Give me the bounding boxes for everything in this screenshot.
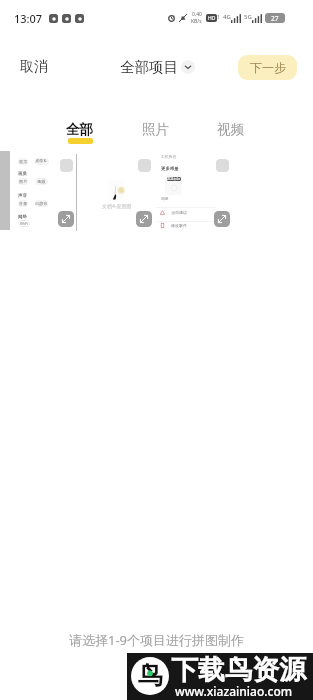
- staticText: 画质: [18, 171, 27, 177]
- button[interactable]: Preview full screen: [58, 211, 74, 227]
- staticText: HD: [208, 15, 216, 22]
- button[interactable]: 照片: [130, 121, 182, 151]
- staticText: 桌面&壁纸: [35, 158, 49, 165]
- staticText: 请选择1-9个项目进行拼图制作: [69, 631, 245, 649]
- staticText: 示范建议: [171, 210, 187, 215]
- staticText: 1: [217, 14, 220, 21]
- staticText: 相册: [161, 196, 169, 201]
- button[interactable]: 取消: [0, 50, 64, 84]
- staticText: KB/s: [191, 18, 202, 25]
- staticText: 音量: [19, 201, 28, 206]
- staticText: www.xiazainiao.com: [175, 683, 293, 699]
- button[interactable]: 全部: [54, 121, 106, 151]
- staticText: 全部: [66, 121, 94, 138]
- staticText: 图片: [19, 179, 28, 184]
- button[interactable]: Select item: [138, 159, 151, 172]
- staticText: 4G: [223, 13, 231, 21]
- button[interactable]: Select item: [60, 159, 73, 172]
- staticText: 视频: [217, 121, 245, 138]
- staticText: 下载鸟资源: [171, 653, 306, 687]
- button[interactable]: Preview full screen: [136, 211, 152, 227]
- button[interactable]: 显示: [0, 151, 78, 232]
- staticText: 网络: [18, 214, 27, 220]
- staticText: 27: [271, 14, 279, 23]
- button[interactable]: 下一步: [238, 55, 297, 80]
- staticText: 13:07: [14, 11, 43, 26]
- staticText: 照片: [142, 121, 170, 138]
- button[interactable]: 全部项目: [116, 54, 199, 80]
- staticText: 声音: [18, 193, 27, 199]
- staticText: 工作所在: [161, 154, 177, 159]
- staticText: 更多相册: [161, 166, 179, 172]
- staticText: 鸟: [138, 660, 163, 691]
- staticText: 文档4-应用图: [102, 203, 132, 210]
- staticText: 修改事件: [171, 223, 187, 228]
- button[interactable]: 视频: [205, 121, 257, 151]
- button[interactable]: 工作所在: [156, 151, 234, 232]
- staticText: 0.40: [192, 11, 202, 18]
- staticText: WiFi: [20, 221, 29, 227]
- button[interactable]: Select item: [216, 159, 229, 172]
- staticText: 全部项目: [120, 58, 178, 76]
- staticText: 2024年4月: [167, 177, 181, 181]
- staticText: 视频: [37, 179, 46, 184]
- staticText: 5G: [244, 13, 252, 21]
- staticText: 显示: [19, 159, 28, 164]
- button[interactable]: 文档4-应用图: [78, 151, 156, 232]
- staticText: 已静音: [35, 201, 48, 206]
- button[interactable]: Preview full screen: [214, 211, 230, 227]
- staticText: 取消: [20, 58, 48, 76]
- staticText: 下一步: [250, 60, 286, 75]
